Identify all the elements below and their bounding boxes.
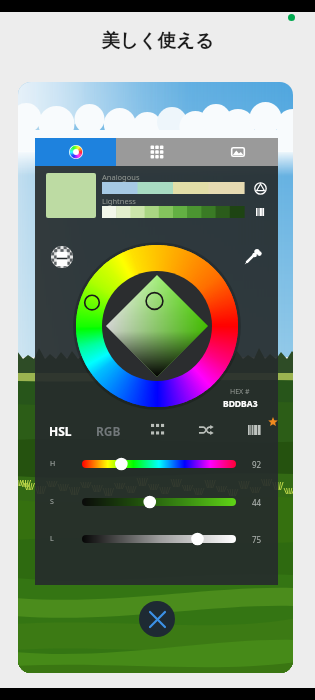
button[interactable]: L slider [82,530,236,548]
button[interactable]: Pick color from screen [243,246,263,266]
button[interactable]: Color wheel [76,245,238,407]
button[interactable]: Transparency [51,246,73,268]
button[interactable]: H slider [82,455,236,473]
staticText: HSL [49,423,72,439]
button[interactable]: Shades [252,204,268,220]
button[interactable]: HSL [44,420,76,442]
staticText: 44 [252,497,262,508]
button[interactable]: Color wheel tab [35,138,116,166]
staticText: Lightness [102,196,136,206]
button[interactable]: Analogous palette [102,182,244,194]
staticText: L [50,534,54,544]
button[interactable]: Palettes tab [116,138,197,166]
staticText: H [50,459,56,469]
staticText: S [50,497,54,507]
button[interactable]: Image tab [197,138,278,166]
staticText: RGB [96,423,121,439]
staticText: Analogous [102,172,140,182]
button[interactable]: Lightness palette [102,206,244,218]
button[interactable]: Shuffle [196,420,216,440]
staticText: 75 [252,534,262,545]
button[interactable]: Saved palettes [245,420,265,440]
staticText: 92 [252,459,262,470]
button[interactable]: Selected color [46,173,96,218]
button[interactable]: Close [139,601,175,637]
button[interactable]: RGB [92,420,124,442]
staticText: BDDBA3 [223,398,258,410]
button[interactable]: Swatches [148,420,168,440]
button[interactable]: Harmony mode [252,180,268,196]
staticText: 美しく使える [0,29,315,52]
staticText: HEX # [230,387,250,397]
button[interactable]: S slider [82,493,236,511]
